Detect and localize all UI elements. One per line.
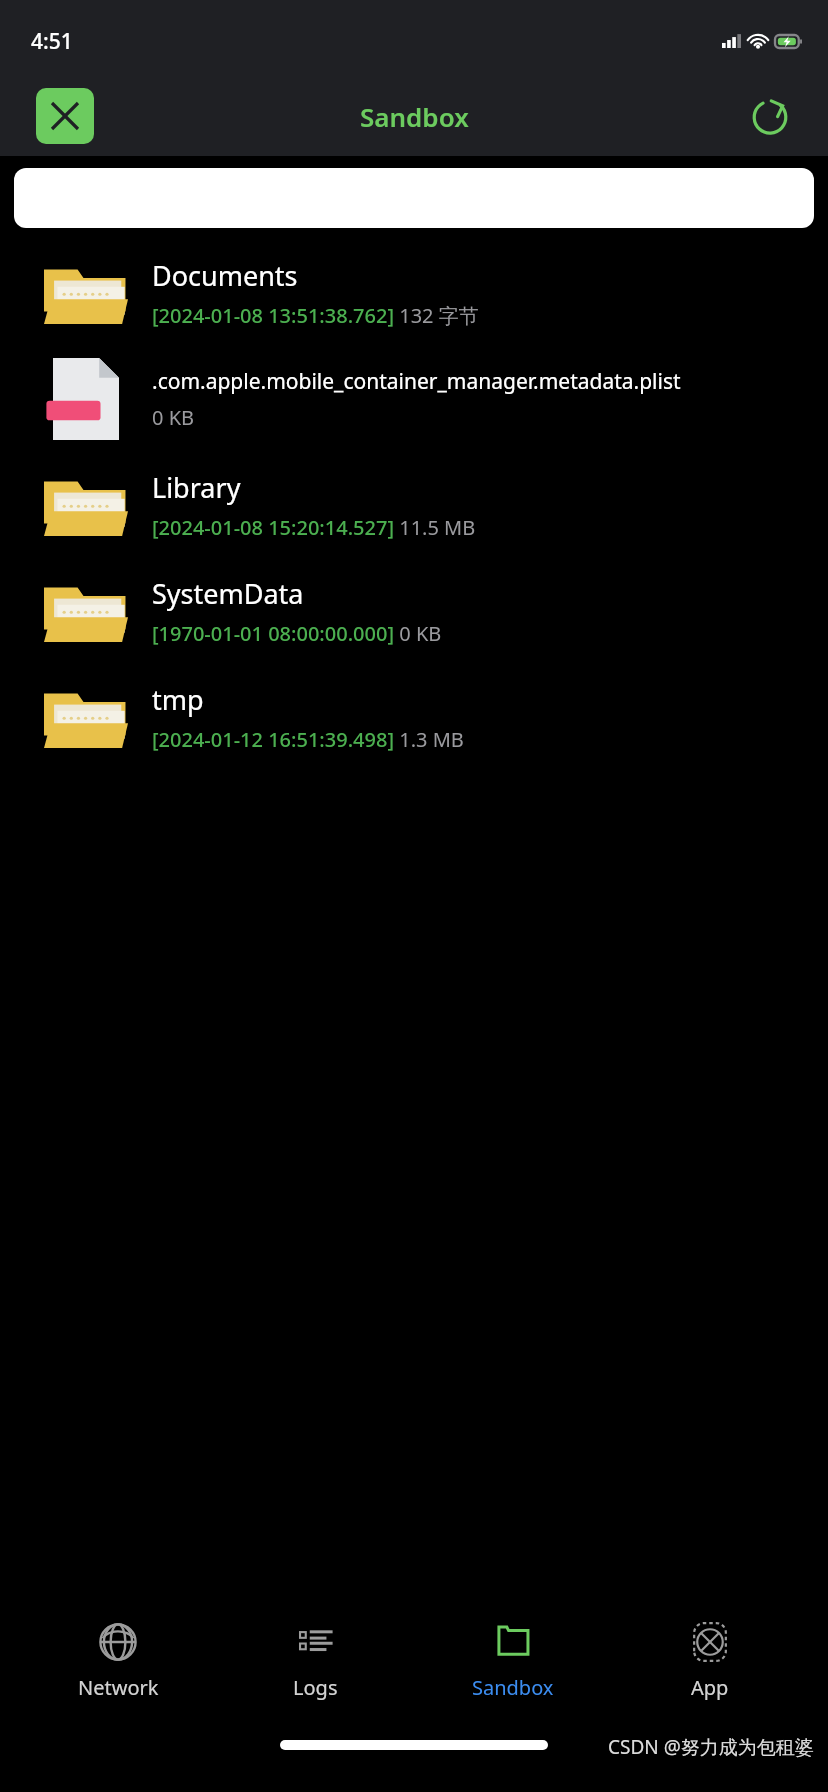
button[interactable]: Logs <box>235 1614 395 1707</box>
staticText: [1970-01-01 08:00:00.000] 0 KB <box>152 620 442 647</box>
staticText: Library <box>152 469 241 506</box>
staticText: Sandbox <box>472 1674 554 1701</box>
button[interactable]: Sandbox <box>433 1614 593 1707</box>
staticText: [2024-01-12 16:51:39.498] 1.3 MB <box>152 726 464 753</box>
staticText: SystemData <box>152 575 304 612</box>
button[interactable]: SystemData <box>0 558 828 664</box>
staticText: tmp <box>152 681 204 718</box>
button[interactable]: Close <box>36 88 94 144</box>
staticText: [2024-01-08 15:20:14.527] 11.5 MB <box>152 514 476 541</box>
button[interactable]: Library <box>0 452 828 558</box>
staticText: Logs <box>293 1674 338 1701</box>
staticText: 4:51 <box>31 27 73 56</box>
button[interactable]: Refresh <box>742 88 798 144</box>
staticText: 0 KB <box>152 404 195 431</box>
staticText: Documents <box>152 257 298 294</box>
button[interactable]: Documents <box>0 240 828 346</box>
staticText: App <box>691 1674 729 1701</box>
button[interactable] <box>14 168 814 228</box>
button[interactable]: Network <box>38 1614 198 1707</box>
button[interactable]: App <box>630 1614 790 1707</box>
staticText: .com.apple.mobile_container_manager.meta… <box>152 367 681 396</box>
staticText: CSDN @努力成为包租婆 <box>608 1734 814 1760</box>
button[interactable]: .com.apple.mobile_container_manager.meta… <box>0 346 828 452</box>
staticText: Sandbox <box>360 99 469 134</box>
staticText: [2024-01-08 13:51:38.762] 132 字节 <box>152 302 479 329</box>
staticText: Network <box>78 1674 159 1701</box>
button[interactable]: tmp <box>0 664 828 770</box>
